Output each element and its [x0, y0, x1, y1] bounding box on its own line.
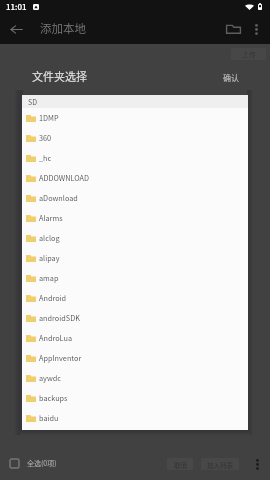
button[interactable]: More options	[248, 17, 264, 41]
button[interactable]: 取消	[167, 458, 193, 470]
button[interactable]: 加入列表	[201, 458, 239, 470]
staticText: SD	[28, 97, 37, 107]
button[interactable]: 确认	[220, 70, 242, 86]
staticText: aDownload	[39, 193, 78, 204]
button[interactable]: aywdc	[22, 368, 248, 388]
staticText: 取消	[174, 460, 187, 469]
staticText: _hc	[39, 153, 52, 164]
staticText: Alarms	[39, 213, 63, 224]
button[interactable]: Alarms	[22, 208, 248, 228]
button[interactable]: 全选(0项)	[10, 458, 57, 468]
button[interactable]: baidu	[22, 408, 248, 428]
staticText: AndroLua	[39, 333, 73, 344]
staticText: ADDOWNLOAD	[39, 173, 90, 184]
button[interactable]: androidSDK	[22, 308, 248, 328]
button[interactable]: AppInventor	[22, 348, 248, 368]
staticText: 360	[39, 133, 52, 144]
staticText: 添加本地	[40, 20, 86, 37]
staticText: 加入列表	[207, 460, 233, 469]
button[interactable]: ADDOWNLOAD	[22, 168, 248, 188]
button[interactable]: Android	[22, 288, 248, 308]
staticText: 1DMP	[39, 113, 59, 124]
button[interactable]: alclog	[22, 228, 248, 248]
button[interactable]: Back	[3, 17, 29, 41]
staticText: androidSDK	[39, 313, 80, 324]
button[interactable]: amap	[22, 268, 248, 288]
staticText: 文件夹选择	[32, 68, 87, 84]
staticText: amap	[39, 273, 59, 284]
button[interactable]: backups	[22, 388, 248, 408]
staticText: baidu	[39, 413, 59, 424]
staticText: 确认	[223, 72, 239, 84]
staticText: 上传	[242, 49, 256, 59]
button[interactable]: More options	[248, 454, 266, 474]
staticText: alclog	[39, 233, 60, 244]
button[interactable]: 1DMP	[22, 108, 248, 128]
button[interactable]: AndroLua	[22, 328, 248, 348]
button[interactable]: alipay	[22, 248, 248, 268]
staticText: 11:01	[6, 1, 27, 13]
staticText: backups	[39, 393, 68, 404]
staticText: alipay	[39, 253, 60, 264]
staticText: Android	[39, 293, 67, 304]
button[interactable]: 360	[22, 128, 248, 148]
staticText: AppInventor	[39, 353, 82, 364]
staticText: aywdc	[39, 373, 61, 384]
button[interactable]: _hc	[22, 148, 248, 168]
button[interactable]: aDownload	[22, 188, 248, 208]
staticText: 全选(0项)	[27, 458, 57, 468]
button[interactable]: Open folder	[220, 17, 246, 41]
